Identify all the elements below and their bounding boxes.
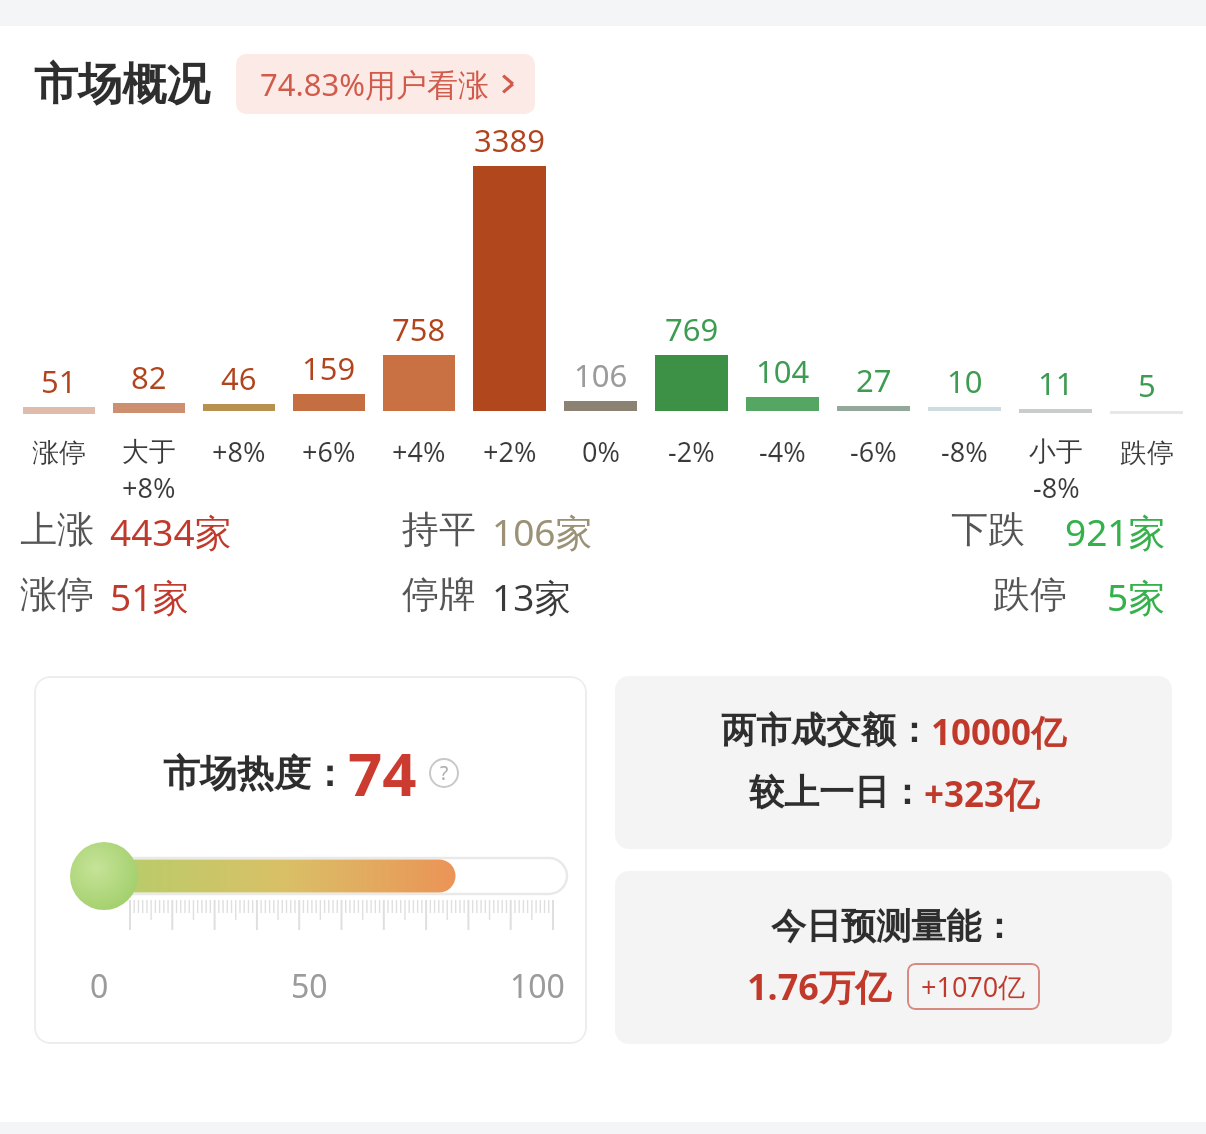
staticText: 1.76万亿 — [747, 962, 891, 1011]
staticText: 持平 — [402, 506, 476, 553]
button[interactable]: 市场热度： — [34, 676, 587, 1044]
staticText: 27 — [856, 359, 892, 401]
staticText: 11 — [1038, 362, 1074, 404]
staticText: 921家 — [1065, 506, 1166, 557]
staticText: 10 — [947, 360, 983, 402]
staticText: 74 — [348, 732, 417, 814]
staticText: 100 — [510, 964, 565, 1008]
staticText: 159 — [302, 347, 356, 389]
staticText: +323亿 — [924, 770, 1040, 818]
staticText: +4% — [392, 433, 446, 470]
staticText: 涨停 — [32, 436, 86, 470]
button[interactable]: 说明 — [429, 758, 459, 788]
button[interactable]: 74.83%用户看涨 — [236, 54, 535, 114]
button[interactable]: 两市成交额： — [615, 676, 1172, 849]
staticText: 0 — [90, 964, 109, 1008]
staticText: 82 — [131, 356, 167, 398]
staticText: 13家 — [492, 571, 572, 622]
staticText: 769 — [665, 308, 719, 350]
staticText: 大于 — [122, 435, 176, 469]
staticText: 小于 — [1029, 435, 1083, 469]
staticText: 758 — [392, 308, 446, 350]
staticText: 跌停 — [993, 571, 1067, 618]
staticText: 停牌 — [402, 571, 476, 618]
staticText: 两市成交额： — [721, 708, 931, 752]
staticText: +2% — [483, 433, 537, 470]
staticText: 市场概况 — [34, 57, 210, 112]
staticText: 106家 — [492, 506, 593, 557]
staticText: 46 — [221, 357, 257, 399]
staticText: 上涨 — [20, 506, 94, 553]
staticText: -8% — [941, 433, 988, 470]
staticText: -2% — [668, 433, 715, 470]
staticText: 106 — [574, 354, 628, 396]
staticText: +6% — [302, 433, 356, 470]
staticText: +1070亿 — [921, 968, 1026, 1005]
staticText: -4% — [759, 433, 806, 470]
staticText: 51家 — [110, 571, 190, 622]
staticText: +8% — [122, 469, 176, 506]
button[interactable]: 今日预测量能： — [615, 871, 1172, 1044]
staticText: ? — [440, 760, 449, 786]
staticText: 跌停 — [1120, 436, 1174, 470]
staticText: 较上一日： — [749, 770, 924, 814]
staticText: 市场热度： — [163, 750, 348, 797]
staticText: 10000亿 — [931, 708, 1067, 756]
staticText: -6% — [850, 433, 897, 470]
staticText: 74.83%用户看涨 — [260, 63, 489, 105]
staticText: 3389 — [474, 119, 545, 161]
staticText: 5 — [1138, 364, 1156, 406]
staticText: 4434家 — [110, 506, 232, 557]
staticText: 下跌 — [951, 506, 1025, 553]
staticText: 涨停 — [20, 571, 94, 618]
staticText: 5家 — [1107, 571, 1166, 622]
staticText: 104 — [756, 350, 810, 392]
staticText: 0% — [582, 433, 620, 470]
staticText: 今日预测量能： — [771, 904, 1016, 948]
staticText: -8% — [1033, 469, 1080, 506]
staticText: 50 — [291, 964, 328, 1008]
staticText: 51 — [41, 360, 77, 402]
staticText: +8% — [212, 433, 266, 470]
